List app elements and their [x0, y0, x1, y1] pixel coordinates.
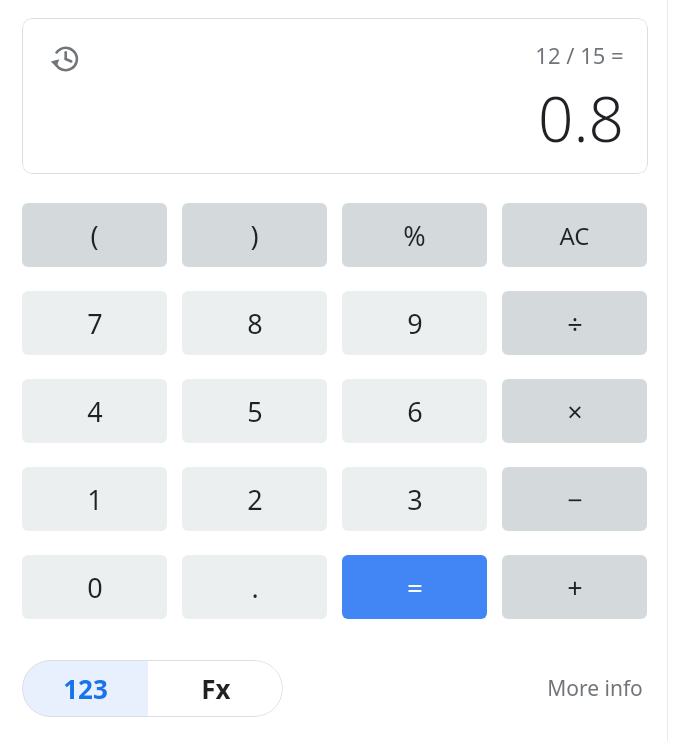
staticText: . [251, 569, 259, 606]
staticText: 6 [407, 393, 423, 430]
staticText: ( [90, 217, 99, 254]
staticText: 4 [87, 393, 103, 430]
button[interactable]: 8 [182, 291, 327, 355]
button[interactable]: − [502, 467, 647, 531]
staticText: 5 [247, 393, 263, 430]
button[interactable]: 2 [182, 467, 327, 531]
staticText: + [567, 569, 583, 606]
staticText: 7 [87, 305, 103, 342]
button[interactable]: . [182, 555, 327, 619]
button[interactable]: ) [182, 203, 327, 267]
staticText: 12 / 15 = [535, 40, 624, 70]
staticText: More info [547, 674, 643, 703]
button[interactable]: AC [502, 203, 647, 267]
staticText: 9 [407, 305, 423, 342]
button[interactable]: 6 [342, 379, 487, 443]
staticText: × [567, 393, 583, 430]
button[interactable]: More info [543, 668, 647, 709]
staticText: ÷ [567, 305, 583, 342]
staticText: 1 [87, 481, 103, 518]
button[interactable]: 3 [342, 467, 487, 531]
button[interactable]: 0 [22, 555, 167, 619]
button[interactable]: 7 [22, 291, 167, 355]
button[interactable]: 5 [182, 379, 327, 443]
button[interactable]: × [502, 379, 647, 443]
button[interactable]: 1 [22, 467, 167, 531]
staticText: 8 [247, 305, 263, 342]
staticText: = [407, 569, 423, 606]
staticText: AC [559, 219, 590, 252]
button[interactable]: = [342, 555, 487, 619]
staticText: Fx [201, 671, 231, 706]
button[interactable]: Fx [148, 660, 283, 717]
button[interactable]: % [342, 203, 487, 267]
button[interactable]: ( [22, 203, 167, 267]
button[interactable]: 9 [342, 291, 487, 355]
button[interactable]: 123 [22, 660, 148, 717]
staticText: 0 [87, 569, 103, 606]
staticText: ) [250, 217, 259, 254]
button[interactable]: 4 [22, 379, 167, 443]
staticText: 123 [63, 671, 108, 706]
staticText: − [567, 481, 583, 518]
staticText: 3 [407, 481, 423, 518]
button[interactable]: + [502, 555, 647, 619]
button[interactable]: ÷ [502, 291, 647, 355]
button[interactable]: History [42, 37, 86, 81]
staticText: 0.8 [538, 76, 624, 160]
staticText: 2 [247, 481, 263, 518]
staticText: % [403, 217, 426, 254]
